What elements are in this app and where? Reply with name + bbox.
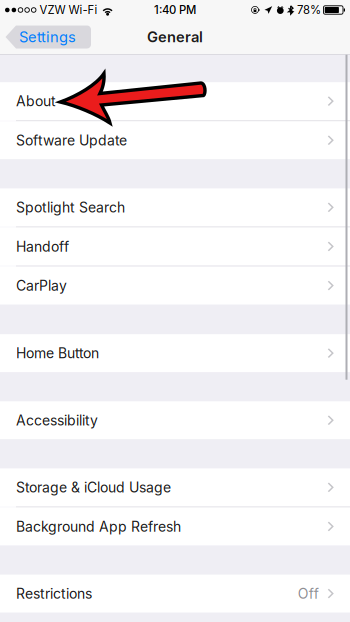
- staticText: General: [147, 28, 203, 46]
- button[interactable]: Accessibility: [0, 401, 350, 439]
- staticText: Storage & iCloud Usage: [16, 479, 171, 496]
- staticText: VZW Wi-Fi: [39, 3, 97, 17]
- button[interactable]: Software Update: [0, 121, 350, 159]
- staticText: About: [16, 93, 56, 110]
- staticText: Spotlight Search: [16, 199, 125, 216]
- button[interactable]: Restrictions: [0, 575, 350, 613]
- staticText: Background App Refresh: [16, 518, 181, 535]
- staticText: Off: [298, 585, 319, 602]
- staticText: Accessibility: [16, 412, 98, 429]
- button[interactable]: Spotlight Search: [0, 188, 350, 226]
- staticText: 78%: [297, 3, 321, 17]
- staticText: Settings: [19, 28, 76, 46]
- button[interactable]: Settings: [5, 25, 91, 48]
- button[interactable]: Background App Refresh: [0, 507, 350, 546]
- button[interactable]: About: [0, 82, 350, 120]
- button[interactable]: Home Button: [0, 334, 350, 372]
- button[interactable]: Handoff: [0, 227, 350, 266]
- staticText: Handoff: [16, 238, 69, 255]
- staticText: Home Button: [16, 345, 99, 362]
- button[interactable]: Storage & iCloud Usage: [0, 468, 350, 506]
- staticText: CarPlay: [16, 277, 67, 294]
- staticText: Software Update: [16, 132, 127, 149]
- button[interactable]: CarPlay: [0, 267, 350, 305]
- staticText: Restrictions: [16, 585, 92, 602]
- staticText: 1:40 PM: [154, 3, 196, 17]
